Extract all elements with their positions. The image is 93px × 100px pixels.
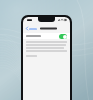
button[interactable]: Back — [25, 26, 38, 31]
other: Back — [26, 27, 28, 30]
button[interactable]: Toggle — [59, 34, 67, 39]
button[interactable]: Toggle — [23, 33, 70, 39]
